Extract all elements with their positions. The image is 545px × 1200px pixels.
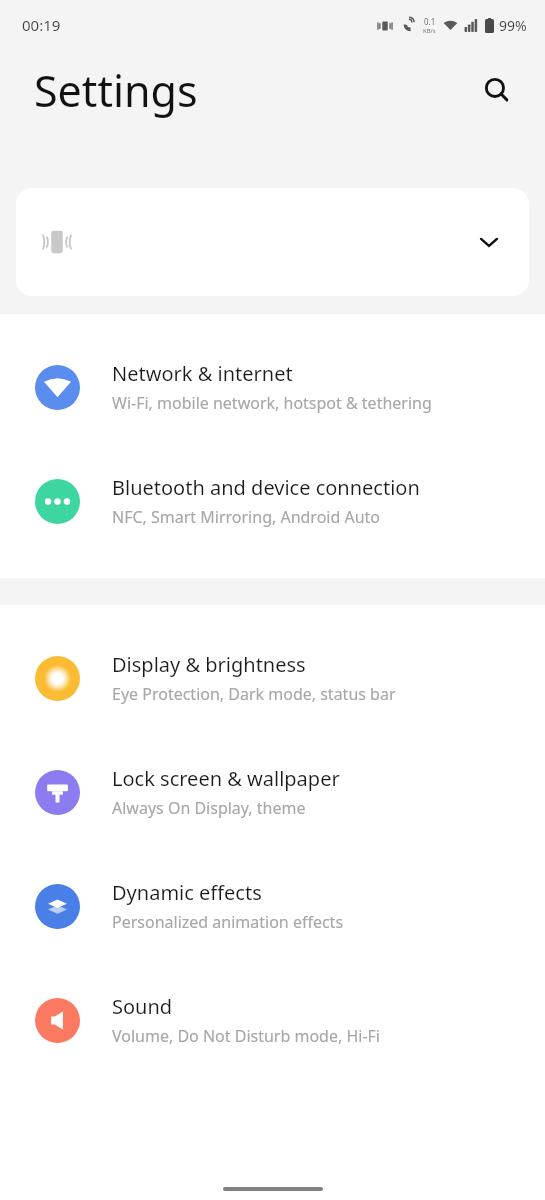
staticText: NFC, Smart Mirroring, Android Auto <box>112 506 381 528</box>
staticText: Volume, Do Not Disturb mode, Hi-Fi <box>112 1025 380 1047</box>
staticText: 99% <box>499 16 527 35</box>
button[interactable]: Search <box>475 68 519 112</box>
staticText: Wi-Fi, mobile network, hotspot & tetheri… <box>112 392 432 414</box>
staticText: Network & internet <box>112 360 293 387</box>
staticText: Sound <box>112 993 173 1020</box>
staticText: Settings <box>34 61 198 120</box>
staticText: Lock screen & wallpaper <box>112 765 340 792</box>
button[interactable]: Network & internet <box>0 330 545 444</box>
button[interactable]: Sound <box>0 963 545 1077</box>
button[interactable]: Bluetooth and device connection <box>0 444 545 558</box>
button[interactable]: Display & brightness <box>0 621 545 735</box>
staticText: Display & brightness <box>112 651 306 678</box>
button[interactable]: Expand <box>16 188 529 296</box>
staticText: 00:19 <box>22 15 61 35</box>
button[interactable]: Dynamic effects <box>0 849 545 963</box>
button[interactable]: Expand <box>471 224 507 260</box>
staticText: Dynamic effects <box>112 879 262 906</box>
staticText: Eye Protection, Dark mode, status bar <box>112 683 396 705</box>
staticText: KB/s <box>423 27 436 35</box>
staticText: 0.1 <box>424 16 436 27</box>
staticText: Personalized animation effects <box>112 911 344 933</box>
staticText: Always On Display, theme <box>112 797 306 819</box>
button[interactable]: Lock screen & wallpaper <box>0 735 545 849</box>
staticText: Bluetooth and device connection <box>112 474 420 501</box>
